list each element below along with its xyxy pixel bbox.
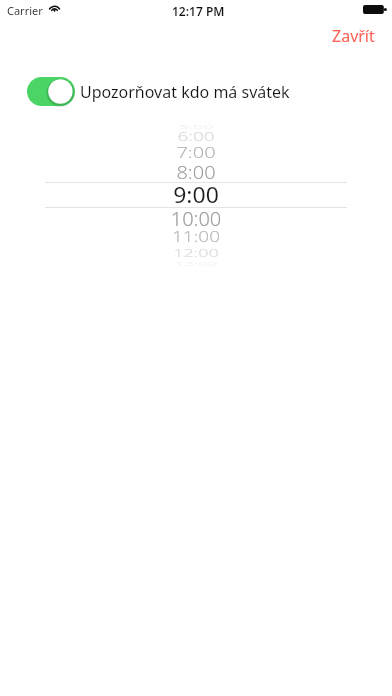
button[interactable]: 8:00 <box>45 159 347 185</box>
button[interactable]: 10:00 <box>45 205 347 231</box>
button[interactable]: 6:00 <box>45 124 347 150</box>
other: Wi-Fi signal <box>48 3 61 12</box>
button[interactable]: 7:00 <box>45 139 347 165</box>
button[interactable]: 5:00 <box>45 114 347 140</box>
staticText: 7:00 <box>45 142 347 162</box>
button[interactable]: Notify about name days, on <box>27 77 75 106</box>
button[interactable]: Zavřít <box>324 20 383 52</box>
other: Battery full <box>363 5 386 14</box>
staticText: 6:00 <box>45 129 347 145</box>
staticText: Upozorňovat kdo má svátek <box>80 81 290 103</box>
staticText: 11:00 <box>45 227 347 247</box>
staticText: 10:00 <box>45 205 347 230</box>
staticText: Carrier <box>7 3 43 18</box>
button[interactable]: Notify about name days, on <box>0 76 392 107</box>
button[interactable]: 11:00 <box>45 224 347 250</box>
staticText: Zavřít <box>332 25 375 47</box>
button[interactable]: 9:00 <box>45 179 347 205</box>
staticText: 9:00 <box>45 180 347 204</box>
staticText: 12:00 <box>45 245 347 261</box>
staticText: 12:17 PM <box>172 3 225 19</box>
staticText: 8:00 <box>45 160 347 184</box>
button[interactable]: 12:00 <box>45 240 347 266</box>
